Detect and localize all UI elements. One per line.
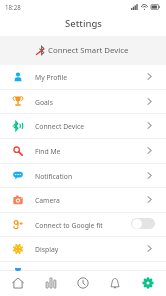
staticText: My Profile	[35, 73, 67, 82]
staticText: Camera	[35, 196, 60, 205]
staticText: Connect Device	[35, 122, 85, 131]
button[interactable]: My Profile	[0, 65, 166, 90]
button[interactable]: Settings	[134, 268, 162, 296]
button[interactable]: Connect Device	[0, 114, 166, 139]
staticText: 18:28	[5, 3, 21, 11]
button[interactable]: Home	[4, 268, 32, 296]
button[interactable]: Notifications	[101, 268, 129, 296]
button[interactable]: History	[69, 268, 97, 296]
button[interactable]: Notification	[0, 164, 166, 188]
staticText: Notification	[35, 172, 73, 181]
staticText: Find Me	[35, 147, 61, 156]
button[interactable]: Connect to Google fit	[0, 213, 166, 237]
button[interactable]: Camera	[0, 188, 166, 213]
staticText: Connect to Google fit	[35, 221, 103, 230]
staticText: Settings	[65, 17, 102, 30]
button[interactable]: Connect Smart Device	[0, 36, 166, 65]
staticText: Display	[35, 245, 59, 254]
staticText: Goals	[35, 98, 53, 107]
staticText: Connect Smart Device	[48, 45, 129, 56]
button[interactable]: Statistics	[37, 268, 65, 296]
button[interactable]: Goals	[0, 90, 166, 114]
button[interactable]: Find Me	[0, 139, 166, 164]
button[interactable]: Display	[0, 237, 166, 262]
